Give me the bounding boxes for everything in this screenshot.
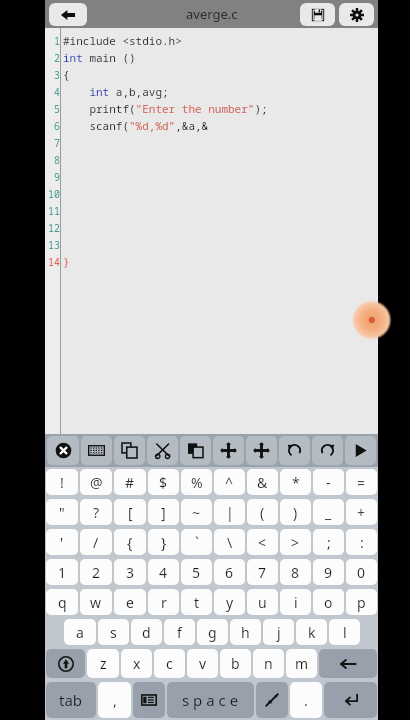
staticText: ? [93, 503, 100, 522]
button[interactable]: + [346, 499, 377, 525]
button[interactable]: o [313, 589, 344, 615]
button[interactable]: kbd [133, 682, 165, 718]
staticText: h [241, 623, 250, 642]
button[interactable]: 9 [313, 559, 344, 585]
button[interactable]: tab [46, 682, 96, 718]
button[interactable]: ` [181, 529, 212, 555]
button[interactable]: [ [114, 499, 146, 525]
button[interactable]: y [214, 589, 245, 615]
button[interactable]: Close [47, 436, 79, 465]
button[interactable]: : [346, 529, 377, 555]
staticText: ^ [225, 473, 234, 492]
staticText: 6 [225, 563, 234, 582]
staticText: m [295, 654, 309, 673]
staticText: * [292, 473, 300, 492]
button[interactable]: t [181, 589, 212, 615]
button[interactable]: Paste [180, 436, 211, 465]
button[interactable]: 3 [114, 559, 146, 585]
button[interactable]: Undo [279, 436, 310, 465]
button[interactable]: b [220, 649, 251, 678]
button[interactable]: ^ [214, 469, 245, 495]
button[interactable]: 7 [247, 559, 278, 585]
staticText: } [63, 254, 70, 269]
staticText: 8 [54, 153, 60, 167]
button[interactable]: @ [80, 469, 112, 495]
button[interactable]: ( [247, 499, 278, 525]
button[interactable]: q [46, 589, 78, 615]
button[interactable]: 0 [346, 559, 377, 585]
button[interactable]: 4 [148, 559, 179, 585]
button[interactable]: Back [49, 3, 87, 26]
button[interactable]: shift [46, 649, 85, 678]
button[interactable]: z [87, 649, 119, 678]
button[interactable]: > [280, 529, 311, 555]
button[interactable]: c [154, 649, 185, 678]
button[interactable]: n [253, 649, 284, 678]
button[interactable]: g [197, 619, 228, 645]
button[interactable]: shrink [256, 682, 288, 718]
button[interactable]: ! [46, 469, 78, 495]
button[interactable]: = [346, 469, 377, 495]
button[interactable]: - [313, 469, 344, 495]
button[interactable]: < [247, 529, 278, 555]
button[interactable]: back [319, 649, 377, 678]
button[interactable]: ) [280, 499, 311, 525]
button[interactable]: ~ [181, 499, 212, 525]
button[interactable]: a [64, 619, 96, 645]
button[interactable]: Cut [147, 436, 178, 465]
button[interactable]: p [346, 589, 377, 615]
button[interactable]: } [148, 529, 179, 555]
button[interactable]: w [80, 589, 112, 615]
button[interactable]: 6 [214, 559, 245, 585]
button[interactable]: Keyboard [81, 436, 112, 465]
button[interactable]: Run [345, 436, 376, 465]
button[interactable]: ? [80, 499, 112, 525]
button[interactable]: Save [300, 3, 335, 26]
button[interactable]: h [230, 619, 261, 645]
button[interactable]: . [290, 682, 322, 718]
button[interactable]: ; [313, 529, 344, 555]
button[interactable]: " [46, 499, 78, 525]
button[interactable]: , [98, 682, 131, 718]
button[interactable]: 5 [181, 559, 212, 585]
button[interactable]: \ [214, 529, 245, 555]
button[interactable]: Navigate [246, 436, 277, 465]
button[interactable]: { [114, 529, 146, 555]
button[interactable]: m [286, 649, 317, 678]
button[interactable]: u [247, 589, 278, 615]
button[interactable]: x [121, 649, 152, 678]
button[interactable]: r [148, 589, 179, 615]
button[interactable]: l [329, 619, 360, 645]
button[interactable]: s [98, 619, 129, 645]
button[interactable]: Redo [312, 436, 343, 465]
button[interactable]: Move [213, 436, 244, 465]
button[interactable]: i [280, 589, 311, 615]
button[interactable]: k [296, 619, 327, 645]
button[interactable]: & [247, 469, 278, 495]
button[interactable]: v [187, 649, 218, 678]
button[interactable]: % [181, 469, 212, 495]
button[interactable]: | [214, 499, 245, 525]
button[interactable]: ' [46, 529, 78, 555]
button[interactable]: d [131, 619, 162, 645]
button[interactable]: s p a c e [167, 682, 254, 718]
button[interactable]: enter [324, 682, 377, 718]
button[interactable]: Settings [339, 3, 374, 26]
staticText: ; [327, 533, 331, 552]
button[interactable]: 8 [280, 559, 311, 585]
button[interactable]: j [263, 619, 294, 645]
button[interactable]: * [280, 469, 311, 495]
button[interactable]: f [164, 619, 195, 645]
button[interactable]: 1 [46, 559, 78, 585]
button[interactable]: _ [313, 499, 344, 525]
staticText: o [324, 593, 333, 612]
button[interactable]: / [80, 529, 112, 555]
button[interactable]: 2 [80, 559, 112, 585]
button[interactable]: $ [148, 469, 179, 495]
staticText: d [142, 623, 151, 642]
button[interactable]: e [114, 589, 146, 615]
button[interactable]: ] [148, 499, 179, 525]
button[interactable]: # [114, 469, 146, 495]
button[interactable]: Copy [114, 436, 145, 465]
staticText: 7 [258, 563, 267, 582]
